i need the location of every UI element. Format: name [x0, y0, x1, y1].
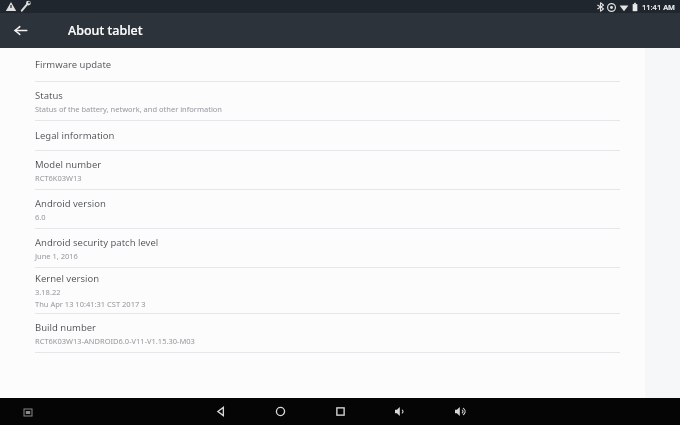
button[interactable]: Volume up	[431, 398, 489, 425]
button[interactable]: Recent apps	[311, 398, 369, 425]
button[interactable]: Volume down	[371, 398, 429, 425]
staticText: Status of the battery, network, and othe…	[35, 104, 223, 114]
staticText: Model number	[35, 158, 102, 171]
button[interactable]: Home	[251, 398, 309, 425]
staticText: June 1, 2016	[35, 251, 78, 261]
staticText: 3.18.22	[35, 287, 61, 297]
staticText: Android security patch level	[35, 236, 159, 249]
staticText: Legal information	[35, 129, 115, 142]
button[interactable]: Switch input method	[20, 404, 36, 420]
staticText: Build number	[35, 321, 97, 334]
staticText: RCT6K03W13-ANDROID6.0-V11-V1.15.30-M03	[35, 336, 195, 346]
button[interactable]: Navigate up	[0, 13, 40, 48]
button[interactable]: Android version	[0, 190, 645, 228]
staticText: RCT6K03W13	[35, 173, 82, 183]
staticText: Status	[35, 89, 63, 102]
staticText: Firmware update	[35, 58, 112, 71]
staticText: Android version	[35, 197, 106, 210]
button[interactable]: Legal information	[0, 121, 645, 150]
button[interactable]: Status	[0, 82, 645, 120]
button[interactable]: Kernel version	[0, 268, 645, 313]
button[interactable]: Model number	[0, 151, 645, 189]
staticText: 11:41 AM	[642, 2, 675, 12]
button[interactable]: Firmware update	[0, 48, 645, 81]
button[interactable]: Back	[191, 398, 249, 425]
staticText: About tablet	[68, 22, 143, 39]
staticText: Kernel version	[35, 272, 100, 285]
staticText: Thu Apr 13 10:41:31 CST 2017 3	[35, 299, 146, 309]
staticText: 6.0	[35, 212, 46, 222]
button[interactable]: Build number	[0, 314, 645, 352]
button[interactable]: Android security patch level	[0, 229, 645, 267]
